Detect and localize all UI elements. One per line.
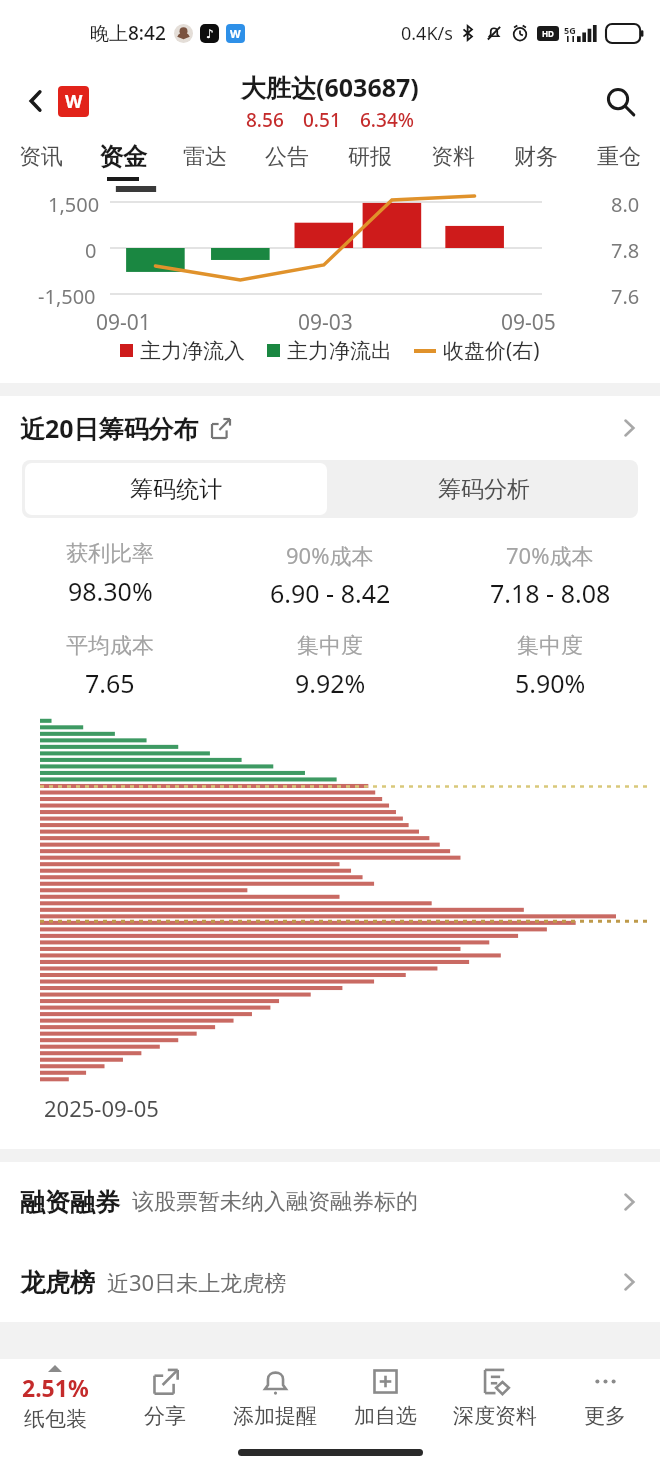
- staticText: 近30日未上龙虎榜: [107, 1267, 287, 1297]
- button[interactable]: 近20日筹码分布: [0, 396, 660, 460]
- staticText: 5G: [564, 24, 576, 36]
- button[interactable]: 添加提醒: [220, 1359, 330, 1437]
- staticText: 9.92%: [295, 666, 366, 700]
- staticText: HD: [542, 28, 554, 39]
- staticText: 雷达: [183, 143, 227, 171]
- staticText: 平均成本: [66, 632, 154, 660]
- staticText: 纸包装: [24, 1406, 87, 1432]
- staticText: 大胜达(603687): [241, 70, 419, 104]
- staticText: 7.65: [85, 666, 135, 700]
- staticText: -1,500: [38, 283, 96, 310]
- staticText: 1,500: [48, 191, 100, 218]
- staticText: 主力净流入: [140, 338, 245, 364]
- other: Expand: [211, 418, 231, 438]
- staticText: W: [230, 26, 241, 41]
- staticText: ♪: [206, 27, 214, 41]
- button[interactable]: Search: [596, 77, 644, 125]
- button[interactable]: 筹码统计: [25, 463, 327, 515]
- staticText: 资金: [99, 142, 147, 172]
- staticText: 该股票暂未纳入融资融券标的: [132, 1188, 418, 1216]
- button[interactable]: 加自选: [330, 1359, 440, 1437]
- staticText: 主力净流出: [287, 338, 392, 364]
- staticText: 09-01: [96, 308, 151, 336]
- button[interactable]: 资金: [82, 136, 164, 186]
- staticText: 筹码统计: [130, 475, 222, 504]
- staticText: 添加提醒: [233, 1403, 317, 1429]
- staticText: 8.0: [611, 191, 640, 218]
- staticText: 09-03: [298, 308, 353, 336]
- staticText: 筹码分析: [438, 475, 530, 504]
- staticText: 资讯: [19, 143, 63, 171]
- staticText: 分享: [144, 1403, 186, 1429]
- staticText: 6.34%: [360, 107, 414, 133]
- button[interactable]: 筹码分析: [330, 460, 638, 518]
- staticText: 重仓: [597, 143, 641, 171]
- button[interactable]: App icon: [58, 86, 89, 117]
- staticText: 90%成本: [286, 540, 374, 570]
- button[interactable]: 雷达: [164, 136, 246, 186]
- button[interactable]: 资料: [411, 136, 494, 186]
- staticText: 0: [85, 237, 97, 264]
- button[interactable]: Back: [14, 79, 58, 123]
- button[interactable]: 资讯: [0, 136, 82, 186]
- button[interactable]: 研报: [328, 136, 411, 186]
- staticText: 集中度: [297, 632, 363, 660]
- button[interactable]: 深度资料: [440, 1359, 550, 1437]
- staticText: 集中度: [517, 632, 583, 660]
- staticText: 加自选: [354, 1403, 417, 1429]
- staticText: 深度资料: [453, 1403, 537, 1429]
- staticText: 财务: [514, 143, 558, 171]
- staticText: 更多: [584, 1403, 626, 1429]
- staticText: 7.18 - 8.08: [490, 576, 611, 610]
- staticText: 资料: [431, 143, 475, 171]
- staticText: 98.30%: [68, 574, 153, 608]
- button[interactable]: 龙虎榜: [0, 1242, 660, 1322]
- staticText: 09-05: [501, 308, 556, 336]
- staticText: 收盘价(右): [443, 336, 540, 365]
- button[interactable]: 2.51%: [0, 1359, 110, 1437]
- staticText: 融资融券: [20, 1187, 120, 1218]
- staticText: W: [65, 89, 83, 114]
- staticText: 6.90 - 8.42: [270, 576, 391, 610]
- staticText: 晚上8:42: [90, 20, 166, 46]
- staticText: 公告: [265, 143, 309, 171]
- staticText: 0.4K/s: [401, 21, 453, 46]
- staticText: 5.90%: [515, 666, 586, 700]
- button[interactable]: 财务: [494, 136, 577, 186]
- button[interactable]: 更多: [550, 1359, 660, 1437]
- staticText: 2025-09-05: [44, 1093, 159, 1123]
- button[interactable]: 融资融券: [0, 1162, 660, 1242]
- staticText: 8.56: [246, 107, 284, 133]
- staticText: 0.51: [303, 107, 341, 133]
- staticText: 70%成本: [506, 540, 594, 570]
- staticText: 7.6: [611, 283, 640, 310]
- staticText: 获利比率: [66, 540, 154, 568]
- staticText: 2.51%: [22, 1372, 89, 1403]
- staticText: 近20日筹码分布: [20, 411, 199, 445]
- button[interactable]: 重仓: [577, 136, 660, 186]
- button[interactable]: 公告: [246, 136, 328, 186]
- staticText: 研报: [348, 143, 392, 171]
- staticText: 龙虎榜: [20, 1267, 95, 1298]
- staticText: 7.8: [611, 237, 640, 264]
- button[interactable]: 分享: [110, 1359, 220, 1437]
